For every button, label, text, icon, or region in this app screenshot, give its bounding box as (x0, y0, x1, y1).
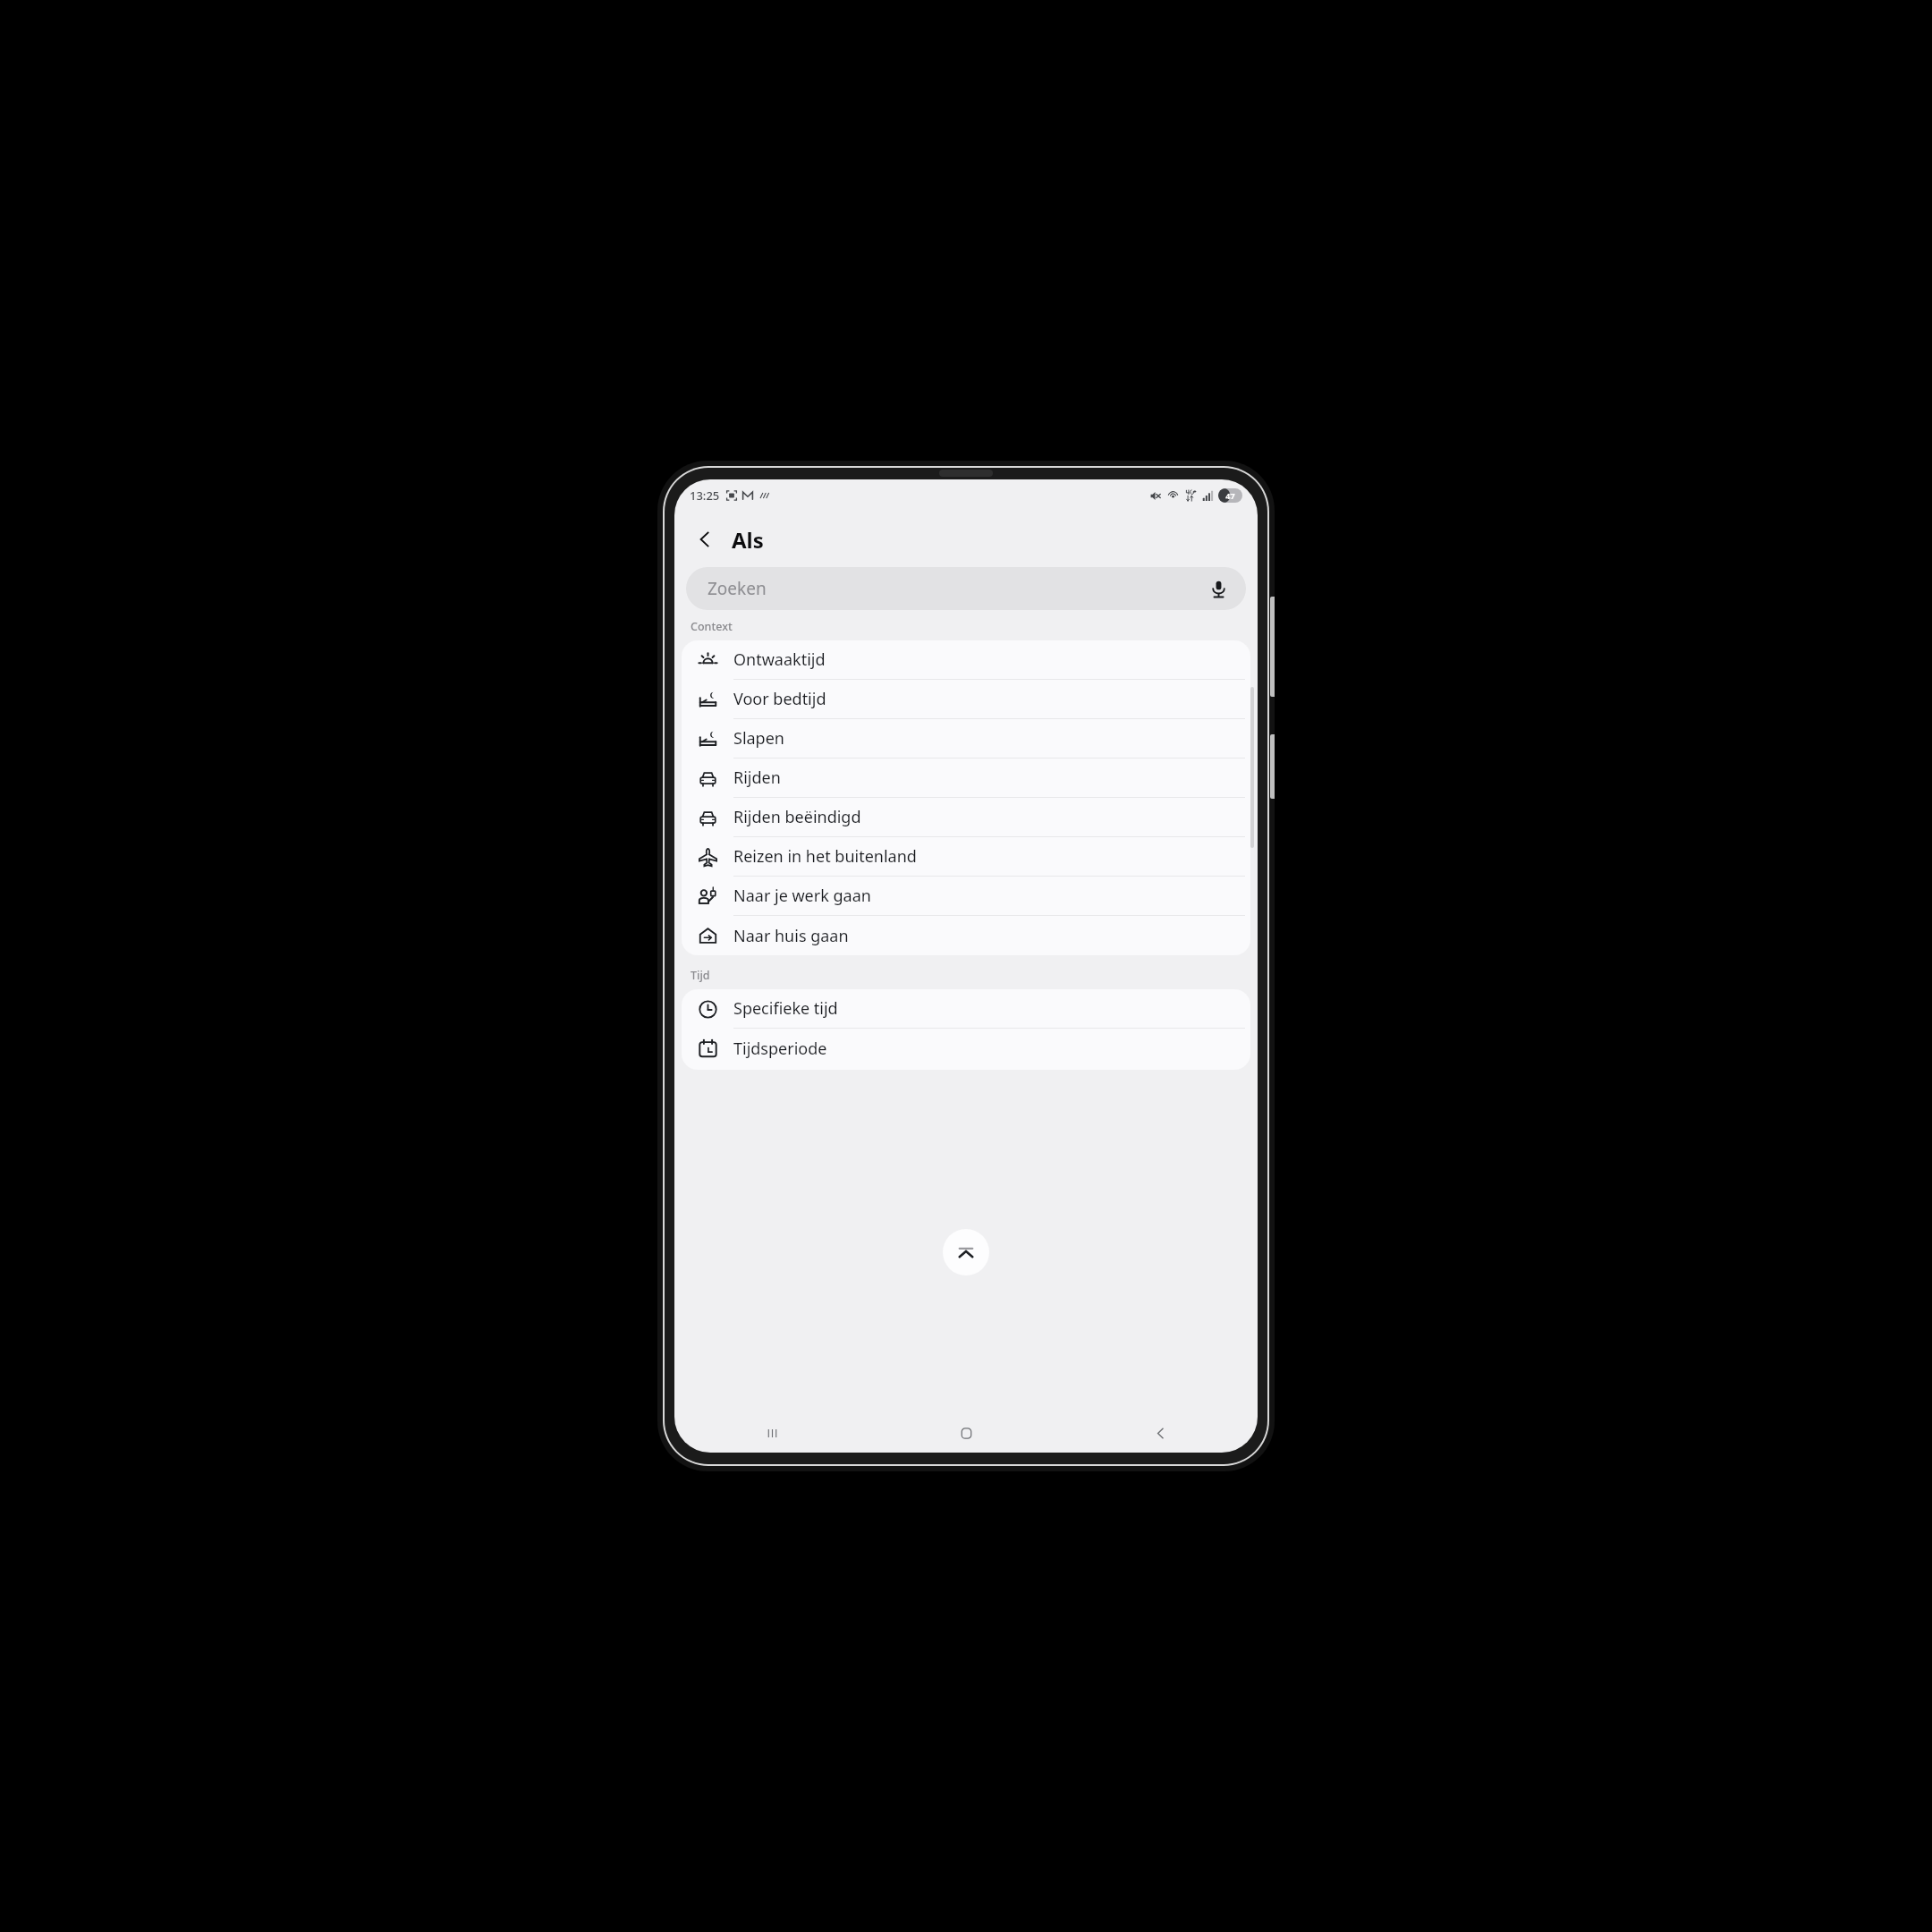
button[interactable]: Rijden (682, 758, 1250, 798)
button[interactable]: Scroll to top (943, 1229, 989, 1275)
button[interactable]: Reizen in het buitenland (682, 837, 1250, 877)
staticText: Specifieke tijd (733, 997, 838, 1020)
staticText: 47 (1218, 490, 1242, 501)
staticText: Tijdsperiode (733, 1038, 827, 1060)
button[interactable]: Voor bedtijd (682, 680, 1250, 719)
staticText: Naar je werk gaan (733, 885, 871, 907)
staticText: Naar huis gaan (733, 925, 849, 947)
button[interactable]: Ontwaaktijd (682, 640, 1250, 680)
staticText: Ontwaaktijd (733, 648, 826, 671)
button[interactable]: Back (1063, 1413, 1258, 1453)
button[interactable]: Naar je werk gaan (682, 877, 1250, 916)
button[interactable]: Tijdsperiode (682, 1029, 1250, 1068)
button[interactable]: Rijden beëindigd (682, 798, 1250, 837)
button[interactable]: Home (869, 1413, 1063, 1453)
button[interactable]: Slapen (682, 719, 1250, 758)
staticText: Voor bedtijd (733, 688, 826, 710)
button[interactable]: Zoeken (686, 567, 1246, 610)
staticText: Rijden (733, 767, 781, 789)
staticText: Slapen (733, 727, 784, 750)
staticText: 13:25 (690, 487, 720, 504)
button[interactable]: Specifieke tijd (682, 989, 1250, 1029)
staticText: Als (732, 525, 764, 555)
staticText: Reizen in het buitenland (733, 845, 917, 868)
button[interactable]: Back (685, 520, 724, 559)
button[interactable]: Recents (674, 1413, 869, 1453)
button[interactable]: Naar huis gaan (682, 916, 1250, 955)
staticText: Zoeken (708, 577, 767, 600)
staticText: Rijden beëindigd (733, 806, 861, 828)
staticText: Tijd (691, 968, 710, 983)
staticText: Context (691, 619, 733, 634)
